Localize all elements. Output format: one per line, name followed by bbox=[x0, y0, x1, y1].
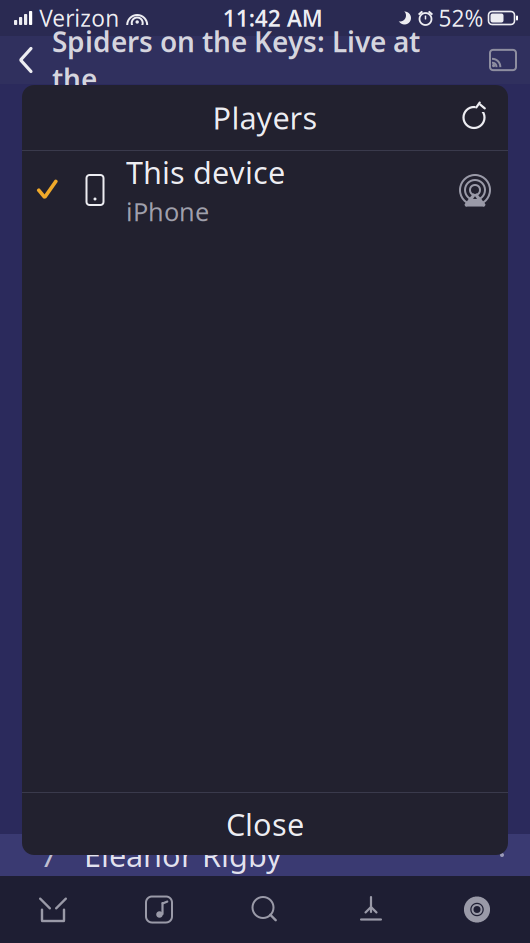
staticText: This device bbox=[126, 152, 285, 192]
button[interactable]: Downloads bbox=[318, 876, 424, 942]
staticText: Spiders on the Keys: Live at the… bbox=[52, 23, 420, 97]
staticText: Players bbox=[212, 97, 317, 138]
staticText: Eleanor Rigby bbox=[84, 835, 282, 875]
button[interactable]: Cast bbox=[476, 36, 530, 84]
button[interactable]: Settings bbox=[424, 876, 530, 942]
button[interactable]: Refresh bbox=[450, 93, 498, 141]
staticText: 11:42 AM bbox=[223, 3, 323, 33]
staticText: iPhone bbox=[126, 194, 209, 228]
button[interactable]: Back bbox=[0, 36, 52, 84]
staticText: 7 bbox=[40, 835, 58, 875]
staticText: Verizon bbox=[39, 3, 119, 33]
staticText: 52% bbox=[438, 3, 483, 33]
staticText: Close bbox=[226, 804, 304, 844]
button[interactable]: Search bbox=[212, 876, 318, 942]
button[interactable]: Library bbox=[106, 876, 212, 942]
button[interactable]: Close bbox=[22, 793, 508, 855]
button[interactable]: Home bbox=[0, 876, 106, 942]
button[interactable]: This device bbox=[22, 151, 508, 229]
